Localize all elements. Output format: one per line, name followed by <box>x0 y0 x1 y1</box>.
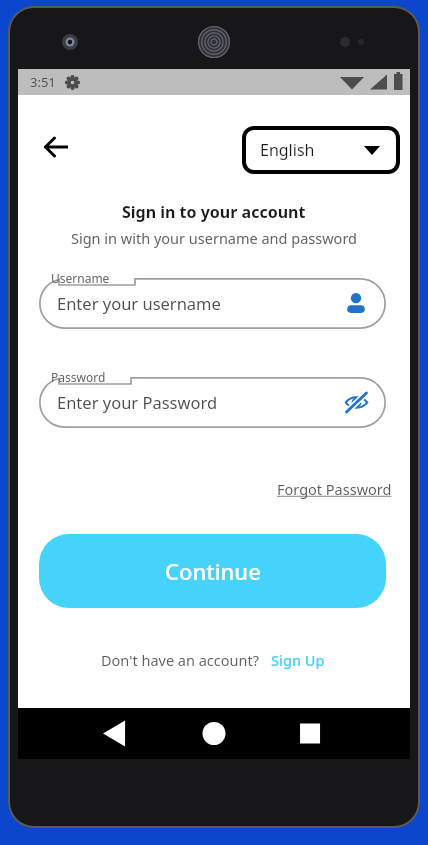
staticText: Username <box>51 270 110 286</box>
staticText: Continue <box>165 556 261 586</box>
button[interactable]: Forgot Password <box>275 475 394 503</box>
staticText: Forgot Password <box>277 479 392 499</box>
button[interactable]: Sign Up <box>269 646 327 674</box>
button[interactable]: Continue <box>39 534 386 608</box>
button[interactable]: Back <box>32 123 80 171</box>
staticText: Enter your username <box>57 292 221 314</box>
staticText: 3:51 <box>30 73 56 91</box>
staticText: Sign in to your account <box>122 201 306 223</box>
button[interactable]: Password <box>39 368 386 428</box>
staticText: Sign in with your username and password <box>71 228 357 248</box>
button[interactable]: Username <box>340 287 372 319</box>
staticText: English <box>260 139 315 161</box>
staticText: Don't have an account? <box>101 650 259 670</box>
staticText: Enter your Password <box>57 391 218 413</box>
staticText: Password <box>51 369 106 385</box>
staticText: Sign Up <box>271 650 325 670</box>
button[interactable]: Username <box>39 269 386 329</box>
button[interactable]: Show password <box>340 386 372 418</box>
button[interactable]: English <box>242 126 400 174</box>
